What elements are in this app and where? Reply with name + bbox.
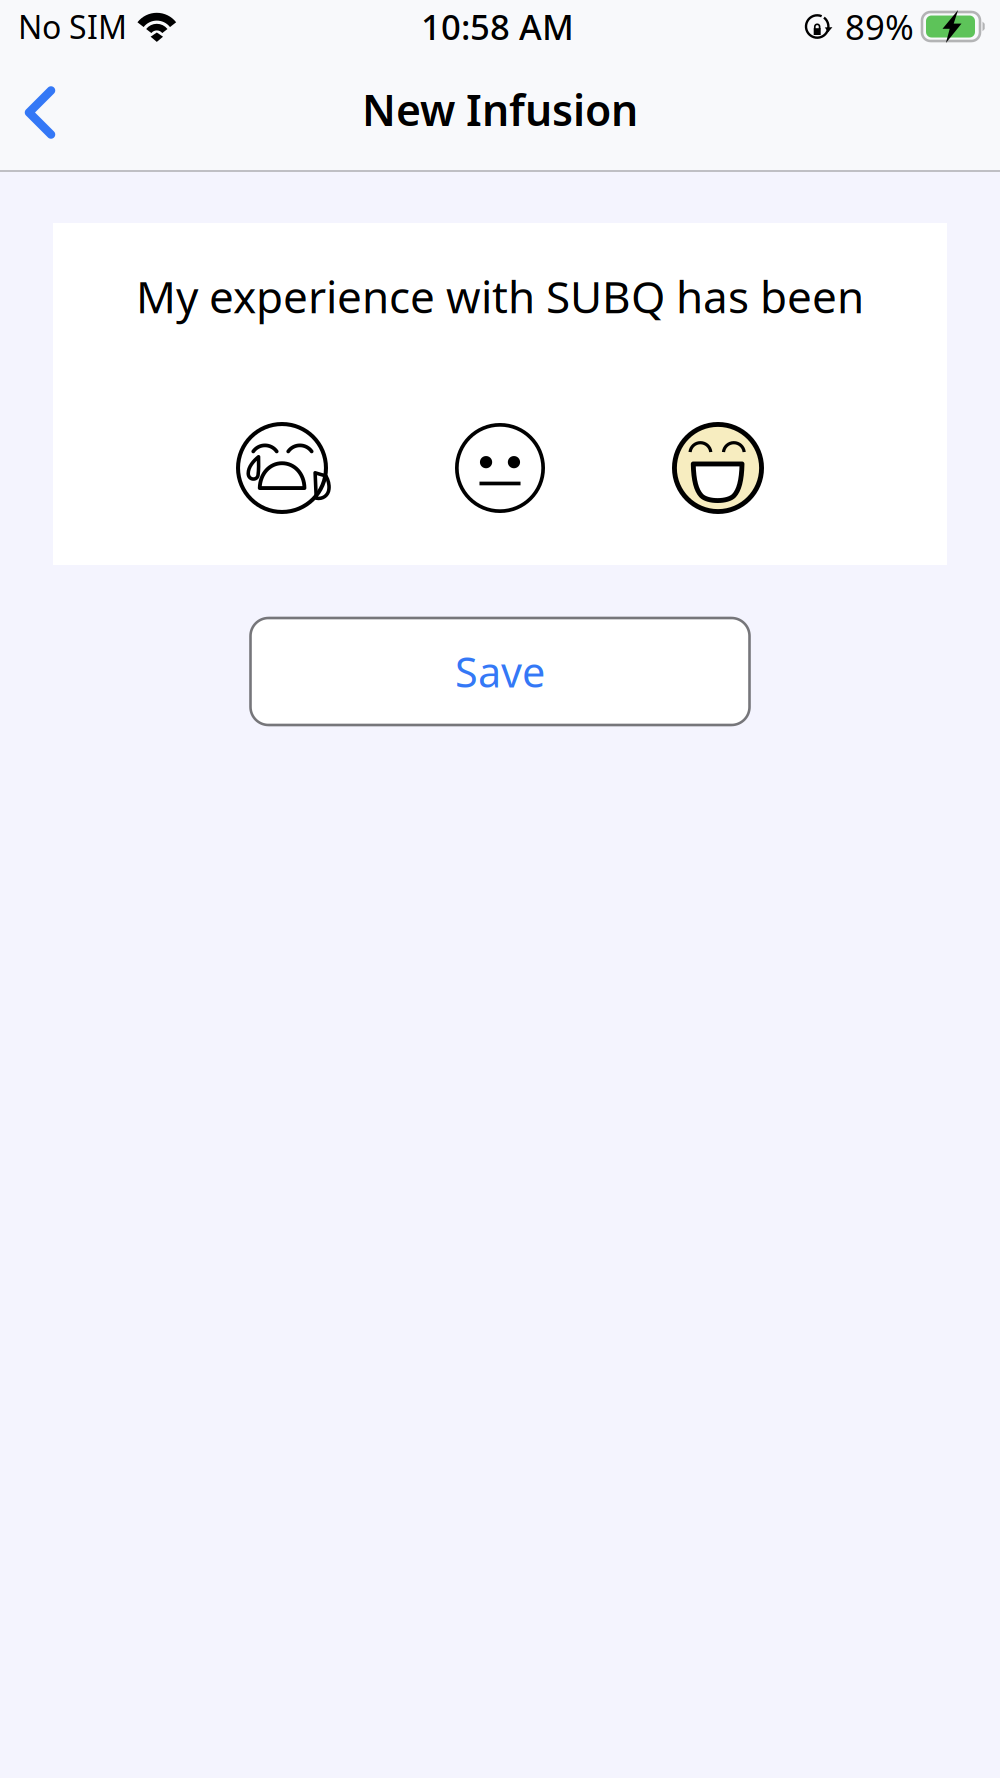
button[interactable]: Good experience: [662, 412, 774, 524]
button[interactable]: Neutral experience: [444, 412, 556, 524]
staticText: Save: [455, 644, 545, 699]
staticText: New Infusion: [362, 81, 638, 138]
staticText: 89%: [845, 3, 914, 49]
staticText: My experience with SUBQ has been: [136, 267, 864, 325]
staticText: No SIM: [18, 5, 127, 48]
button[interactable]: Bad experience: [226, 412, 338, 524]
staticText: 10:58 AM: [421, 3, 574, 49]
button[interactable]: Save: [250, 618, 749, 725]
button[interactable]: Back: [0, 64, 75, 160]
